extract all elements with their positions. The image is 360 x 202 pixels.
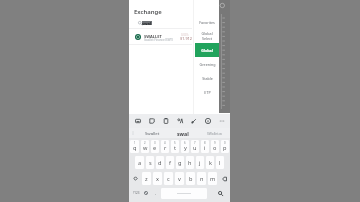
staticText: e <box>153 144 157 152</box>
staticText: SWALLET <box>144 34 162 39</box>
staticText: t <box>174 144 177 152</box>
staticText: Swallet Finance (SWT) <box>144 38 173 42</box>
staticText: ?123 <box>133 191 140 195</box>
button[interactable]: More <box>215 114 229 128</box>
staticText: 7 <box>194 141 196 145</box>
staticText: w <box>143 144 148 152</box>
button[interactable]: k <box>206 156 214 169</box>
button[interactable]: b <box>186 172 195 185</box>
staticText: n <box>200 175 204 183</box>
button[interactable]: m <box>208 172 217 185</box>
staticText: l <box>219 159 221 167</box>
button[interactable]: j <box>196 156 204 169</box>
button[interactable]: Global <box>195 43 219 57</box>
button[interactable]: 4 <box>161 140 169 153</box>
button[interactable]: 9 <box>211 140 219 153</box>
button[interactable]: Shift <box>129 172 141 185</box>
button[interactable]: 0 <box>221 140 229 153</box>
button[interactable]: Info <box>201 114 215 128</box>
button[interactable]: swal <box>129 19 192 28</box>
staticText: m <box>210 175 216 183</box>
button[interactable]: 7 <box>191 140 199 153</box>
staticText: f <box>169 159 171 167</box>
button[interactable]: c <box>164 172 173 185</box>
button[interactable]: Search <box>217 190 223 196</box>
button[interactable]: , <box>153 190 157 195</box>
button[interactable]: z <box>142 172 151 185</box>
button[interactable]: Global Select <box>195 29 219 43</box>
staticText: Stable <box>202 76 213 81</box>
button[interactable]: Themes <box>187 114 201 128</box>
button[interactable]: SWALLET <box>129 29 192 44</box>
button[interactable]: Favorites <box>195 15 219 29</box>
staticText: y <box>184 144 187 152</box>
staticText: i <box>204 144 206 152</box>
staticText: SWallet.w <box>207 131 222 135</box>
button[interactable]: Emoji <box>143 190 148 195</box>
button[interactable]: 1 <box>130 140 139 153</box>
staticText: p <box>223 144 227 152</box>
staticText: d <box>158 159 162 167</box>
button[interactable]: x <box>153 172 162 185</box>
staticText: 0.02% <box>181 33 189 37</box>
button[interactable]: GIF <box>145 114 159 128</box>
button[interactable]: v <box>175 172 184 185</box>
staticText: Favorites <box>199 20 215 25</box>
button[interactable]: 8 <box>201 140 209 153</box>
staticText: j <box>199 159 201 167</box>
staticText: 5 <box>174 141 176 145</box>
staticText: a <box>138 159 142 167</box>
staticText: 8 <box>204 141 206 145</box>
button[interactable]: s <box>146 156 154 169</box>
staticText: 1 <box>134 141 136 145</box>
staticText: ETP <box>204 90 211 95</box>
button[interactable]: 2 <box>141 140 149 153</box>
button[interactable]: ETP <box>195 85 219 99</box>
staticText: q <box>133 144 137 152</box>
button[interactable]: Space <box>161 188 207 199</box>
staticText: u <box>193 144 197 152</box>
staticText: 6 <box>184 141 186 145</box>
staticText: x <box>156 175 159 183</box>
button[interactable]: Greening <box>195 57 219 71</box>
button[interactable]: 6 <box>181 140 189 153</box>
staticText: k <box>209 159 212 167</box>
button[interactable]: Swallet <box>136 128 168 138</box>
staticText: c <box>167 175 170 183</box>
button[interactable]: swal <box>168 128 198 138</box>
button[interactable]: Backspace <box>218 172 230 185</box>
button[interactable]: a <box>135 156 144 169</box>
button[interactable]: d <box>156 156 164 169</box>
staticText: Global Select <box>201 31 213 41</box>
staticText: 3 <box>154 141 156 145</box>
staticText: b <box>189 175 193 183</box>
staticText: Greening <box>199 62 216 67</box>
staticText: r <box>164 144 167 152</box>
staticText: v <box>178 175 181 183</box>
button[interactable]: Options <box>129 128 136 138</box>
staticText: swal <box>142 21 152 25</box>
button[interactable]: Translate <box>173 114 187 128</box>
staticText: Exchange <box>134 8 162 16</box>
staticText: 4 <box>164 141 166 145</box>
staticText: Swallet <box>145 130 160 136</box>
staticText: o <box>213 144 217 152</box>
staticText: s <box>149 159 152 167</box>
staticText: , <box>155 190 156 195</box>
button[interactable]: n <box>197 172 206 185</box>
button[interactable]: 5 <box>171 140 179 153</box>
button[interactable]: h <box>186 156 194 169</box>
button[interactable]: Stable <box>195 71 219 85</box>
button[interactable]: ?123 <box>131 190 142 195</box>
button[interactable]: Clipboard <box>159 114 173 128</box>
staticText: g <box>178 159 182 167</box>
button[interactable]: g <box>176 156 184 169</box>
button[interactable]: f <box>166 156 174 169</box>
button[interactable]: l <box>216 156 224 169</box>
staticText: Global <box>201 48 213 53</box>
staticText: swal <box>177 130 189 137</box>
button[interactable]: 3 <box>151 140 159 153</box>
staticText: 0 <box>224 141 226 145</box>
button[interactable]: SWallet.w <box>198 128 230 138</box>
button[interactable]: Stickers <box>131 114 145 128</box>
